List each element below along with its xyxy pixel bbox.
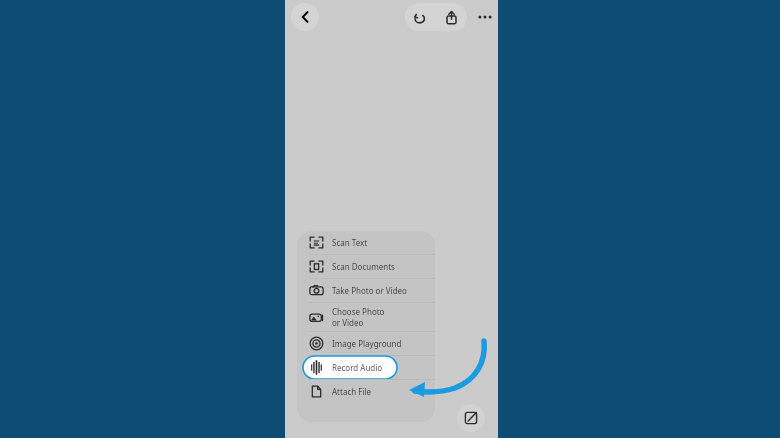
button[interactable]: Share bbox=[436, 3, 467, 31]
staticText: Scan Text bbox=[332, 237, 368, 248]
button[interactable]: Record Audio bbox=[297, 356, 435, 379]
button[interactable]: Take Photo or Video bbox=[297, 279, 435, 302]
button[interactable]: Compose new message bbox=[457, 404, 485, 432]
button[interactable]: Undo bbox=[405, 3, 436, 31]
staticText: Record Audio bbox=[332, 362, 383, 373]
staticText: Attach File bbox=[332, 386, 372, 397]
button[interactable]: Scan Documents bbox=[297, 255, 435, 278]
staticText: Take Photo or Video bbox=[332, 285, 407, 296]
button[interactable]: Image Playground bbox=[297, 332, 435, 355]
button[interactable]: Back bbox=[291, 3, 319, 31]
button[interactable]: Scan Text bbox=[297, 231, 435, 254]
staticText: or Video bbox=[332, 317, 364, 328]
button[interactable]: Attach File bbox=[297, 380, 435, 403]
button[interactable]: More options bbox=[471, 3, 499, 31]
button[interactable]: Choose Photo bbox=[297, 303, 435, 331]
staticText: Image Playground bbox=[332, 338, 402, 349]
staticText: Scan Documents bbox=[332, 261, 395, 272]
staticText: Choose Photo bbox=[332, 306, 385, 317]
